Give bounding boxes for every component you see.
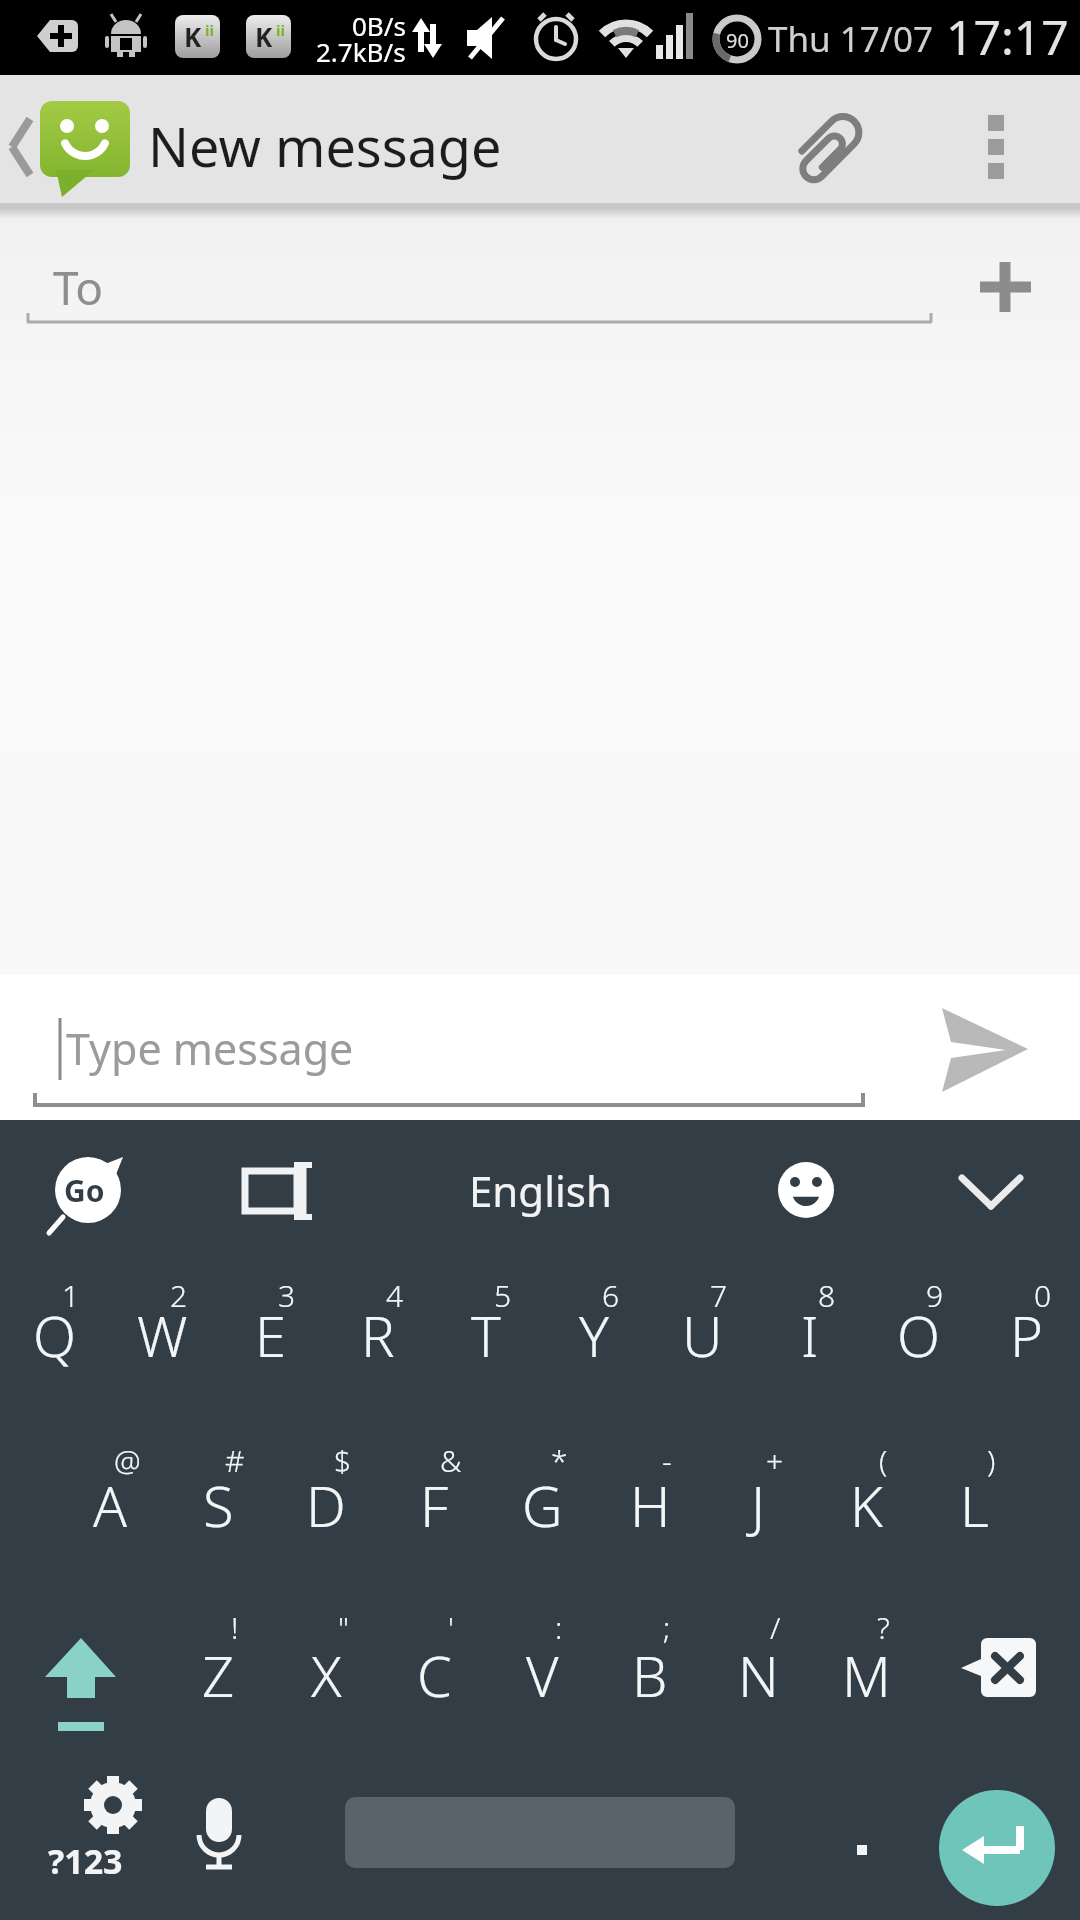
staticText: /: [770, 1607, 781, 1648]
staticText: 90: [726, 27, 749, 54]
button[interactable]: [180, 1760, 270, 1910]
staticText: X: [311, 1637, 342, 1713]
staticText: Go: [64, 1170, 105, 1211]
button[interactable]: D: [272, 1420, 380, 1590]
button[interactable]: [20, 1590, 170, 1760]
staticText: Y: [579, 1297, 609, 1373]
staticText: C: [417, 1637, 452, 1713]
button[interactable]: T: [432, 1250, 540, 1420]
staticText: 5: [494, 1275, 512, 1316]
button[interactable]: O: [864, 1250, 972, 1420]
button[interactable]: [770, 85, 880, 200]
staticText: ii: [276, 20, 285, 40]
staticText: T: [471, 1297, 501, 1373]
staticText: ?: [877, 1607, 890, 1648]
staticText: 1: [62, 1275, 80, 1316]
button[interactable]: K: [812, 1420, 920, 1590]
staticText: Type message: [66, 1019, 354, 1078]
button[interactable]: I: [756, 1250, 864, 1420]
button[interactable]: F: [380, 1420, 488, 1590]
staticText: -: [662, 1440, 672, 1481]
staticText: Thu 17/07: [768, 15, 933, 63]
staticText: H: [630, 1467, 671, 1543]
button[interactable]: [750, 1140, 860, 1245]
staticText: ?123: [48, 1838, 123, 1884]
button[interactable]: [955, 240, 1055, 340]
button[interactable]: H: [596, 1420, 704, 1590]
staticText: (: [879, 1440, 888, 1481]
staticText: B: [632, 1637, 668, 1713]
staticText: K: [184, 19, 202, 54]
staticText: !: [231, 1607, 239, 1648]
button[interactable]: [0, 75, 140, 207]
staticText: S: [203, 1467, 234, 1543]
button[interactable]: [40, 1760, 190, 1910]
staticText: To: [53, 256, 104, 319]
staticText: 8: [818, 1275, 836, 1316]
button[interactable]: P: [972, 1250, 1080, 1420]
button[interactable]: W: [108, 1250, 216, 1420]
staticText: F: [420, 1467, 449, 1543]
staticText: ;: [663, 1607, 671, 1648]
button[interactable]: G: [488, 1420, 596, 1590]
button[interactable]: R: [324, 1250, 432, 1420]
staticText: J: [751, 1467, 766, 1543]
button[interactable]: U: [648, 1250, 756, 1420]
button[interactable]: X: [272, 1590, 380, 1760]
staticText: R: [361, 1297, 395, 1373]
staticText: ii: [205, 20, 214, 40]
staticText: 0B/s: [352, 8, 406, 43]
staticText: E: [255, 1297, 286, 1373]
button[interactable]: Q: [0, 1250, 108, 1420]
button[interactable]: [230, 1140, 330, 1245]
staticText: 3: [278, 1275, 296, 1316]
staticText: 0: [1034, 1275, 1052, 1316]
button[interactable]: M: [812, 1590, 920, 1760]
staticText: @: [114, 1440, 141, 1481]
button[interactable]: [30, 1140, 150, 1245]
staticText: L: [960, 1467, 989, 1543]
button[interactable]: [345, 1790, 735, 1875]
staticText: $: [334, 1440, 352, 1481]
staticText: V: [526, 1637, 559, 1713]
button[interactable]: [930, 1590, 1070, 1760]
staticText: &: [440, 1440, 462, 1481]
staticText: 2.7kB/s: [316, 34, 406, 69]
staticText: 17:17: [946, 4, 1069, 69]
staticText: 9: [926, 1275, 944, 1316]
staticText: P: [1010, 1297, 1043, 1373]
staticText: O: [897, 1297, 940, 1373]
button[interactable]: [940, 1140, 1050, 1245]
button[interactable]: [950, 85, 1050, 200]
staticText: ': [448, 1607, 454, 1648]
staticText: #: [225, 1440, 245, 1481]
button[interactable]: Z: [164, 1590, 272, 1760]
staticText: 2: [170, 1275, 188, 1316]
staticText: A: [93, 1467, 128, 1543]
staticText: K: [255, 19, 273, 54]
button[interactable]: C: [380, 1590, 488, 1760]
button[interactable]: J: [704, 1420, 812, 1590]
button[interactable]: L: [920, 1420, 1028, 1590]
staticText: N: [738, 1637, 779, 1713]
button[interactable]: S: [164, 1420, 272, 1590]
staticText: G: [522, 1467, 563, 1543]
staticText: Q: [33, 1297, 76, 1373]
staticText: New message: [148, 109, 502, 183]
staticText: I: [801, 1297, 819, 1373]
staticText: +: [766, 1440, 784, 1481]
button[interactable]: B: [596, 1590, 704, 1760]
button[interactable]: V: [488, 1590, 596, 1760]
staticText: ": [338, 1607, 349, 1648]
button[interactable]: Y: [540, 1250, 648, 1420]
button[interactable]: A: [56, 1420, 164, 1590]
button[interactable]: [820, 1790, 910, 1900]
staticText: U: [682, 1297, 723, 1373]
button[interactable]: [900, 990, 1060, 1100]
staticText: *: [551, 1440, 568, 1481]
staticText: M: [842, 1637, 891, 1713]
button[interactable]: [939, 1790, 1055, 1906]
button[interactable]: E: [216, 1250, 324, 1420]
button[interactable]: N: [704, 1590, 812, 1760]
staticText: W: [137, 1297, 188, 1373]
